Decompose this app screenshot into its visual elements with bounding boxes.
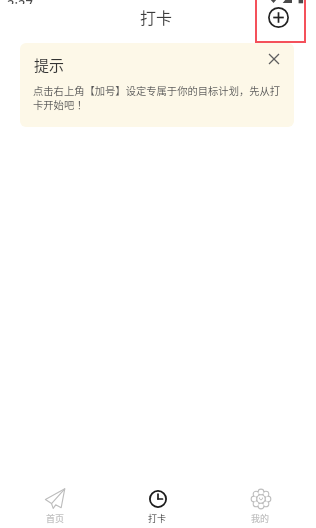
staticText: 打卡 — [148, 512, 167, 525]
staticText: 首页 — [46, 512, 65, 525]
button[interactable]: 打卡 — [106, 480, 209, 528]
staticText: 我的 — [251, 512, 270, 525]
button[interactable]: Add plan — [254, 0, 302, 41]
staticText: 点击右上角【加号】设定专属于你的目标计划，先从打卡开始吧！ — [33, 83, 283, 112]
staticText: 提示 — [34, 54, 65, 76]
staticText: 打卡 — [140, 5, 173, 28]
button[interactable]: Close tip — [258, 44, 289, 74]
button[interactable]: 首页 — [4, 480, 106, 528]
staticText: 2:27 — [7, 0, 33, 4]
button[interactable]: 我的 — [209, 480, 312, 528]
